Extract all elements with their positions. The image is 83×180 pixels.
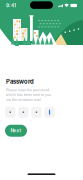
staticText: via the invitation mail. (6, 98, 42, 102)
button[interactable]: Digit entered (18, 107, 29, 118)
button[interactable]: Enter digit (44, 107, 55, 118)
staticText: 9:41 (6, 3, 16, 8)
button[interactable]: Digit entered (31, 107, 42, 118)
button[interactable]: Digit entered (5, 107, 15, 118)
staticText: Please enter the password (6, 88, 49, 92)
button[interactable]: Next (5, 125, 27, 137)
staticText: which has been sent to you (6, 93, 51, 97)
staticText: Next (10, 128, 21, 133)
staticText: Password (6, 78, 34, 85)
